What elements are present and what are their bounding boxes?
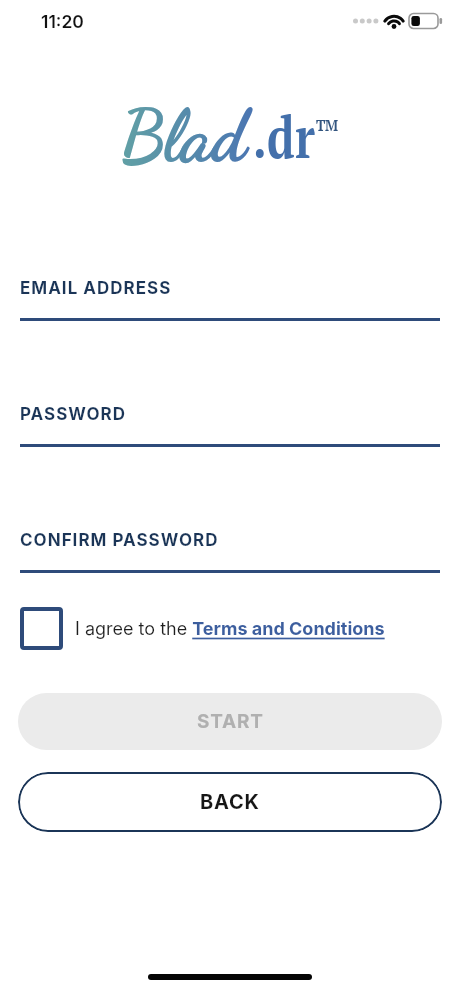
button[interactable]: I agree to the Terms and Conditions bbox=[75, 618, 385, 640]
staticText: CONFIRM PASSWORD bbox=[20, 530, 219, 551]
staticText: PASSWORD bbox=[20, 404, 127, 425]
button[interactable]: BACK bbox=[18, 772, 442, 832]
staticText: 11:20 bbox=[41, 11, 84, 32]
button[interactable] bbox=[20, 607, 63, 650]
staticText: START bbox=[197, 710, 264, 733]
staticText: EMAIL ADDRESS bbox=[20, 278, 172, 299]
button[interactable]: START bbox=[18, 693, 442, 750]
staticText: BACK bbox=[200, 790, 260, 814]
